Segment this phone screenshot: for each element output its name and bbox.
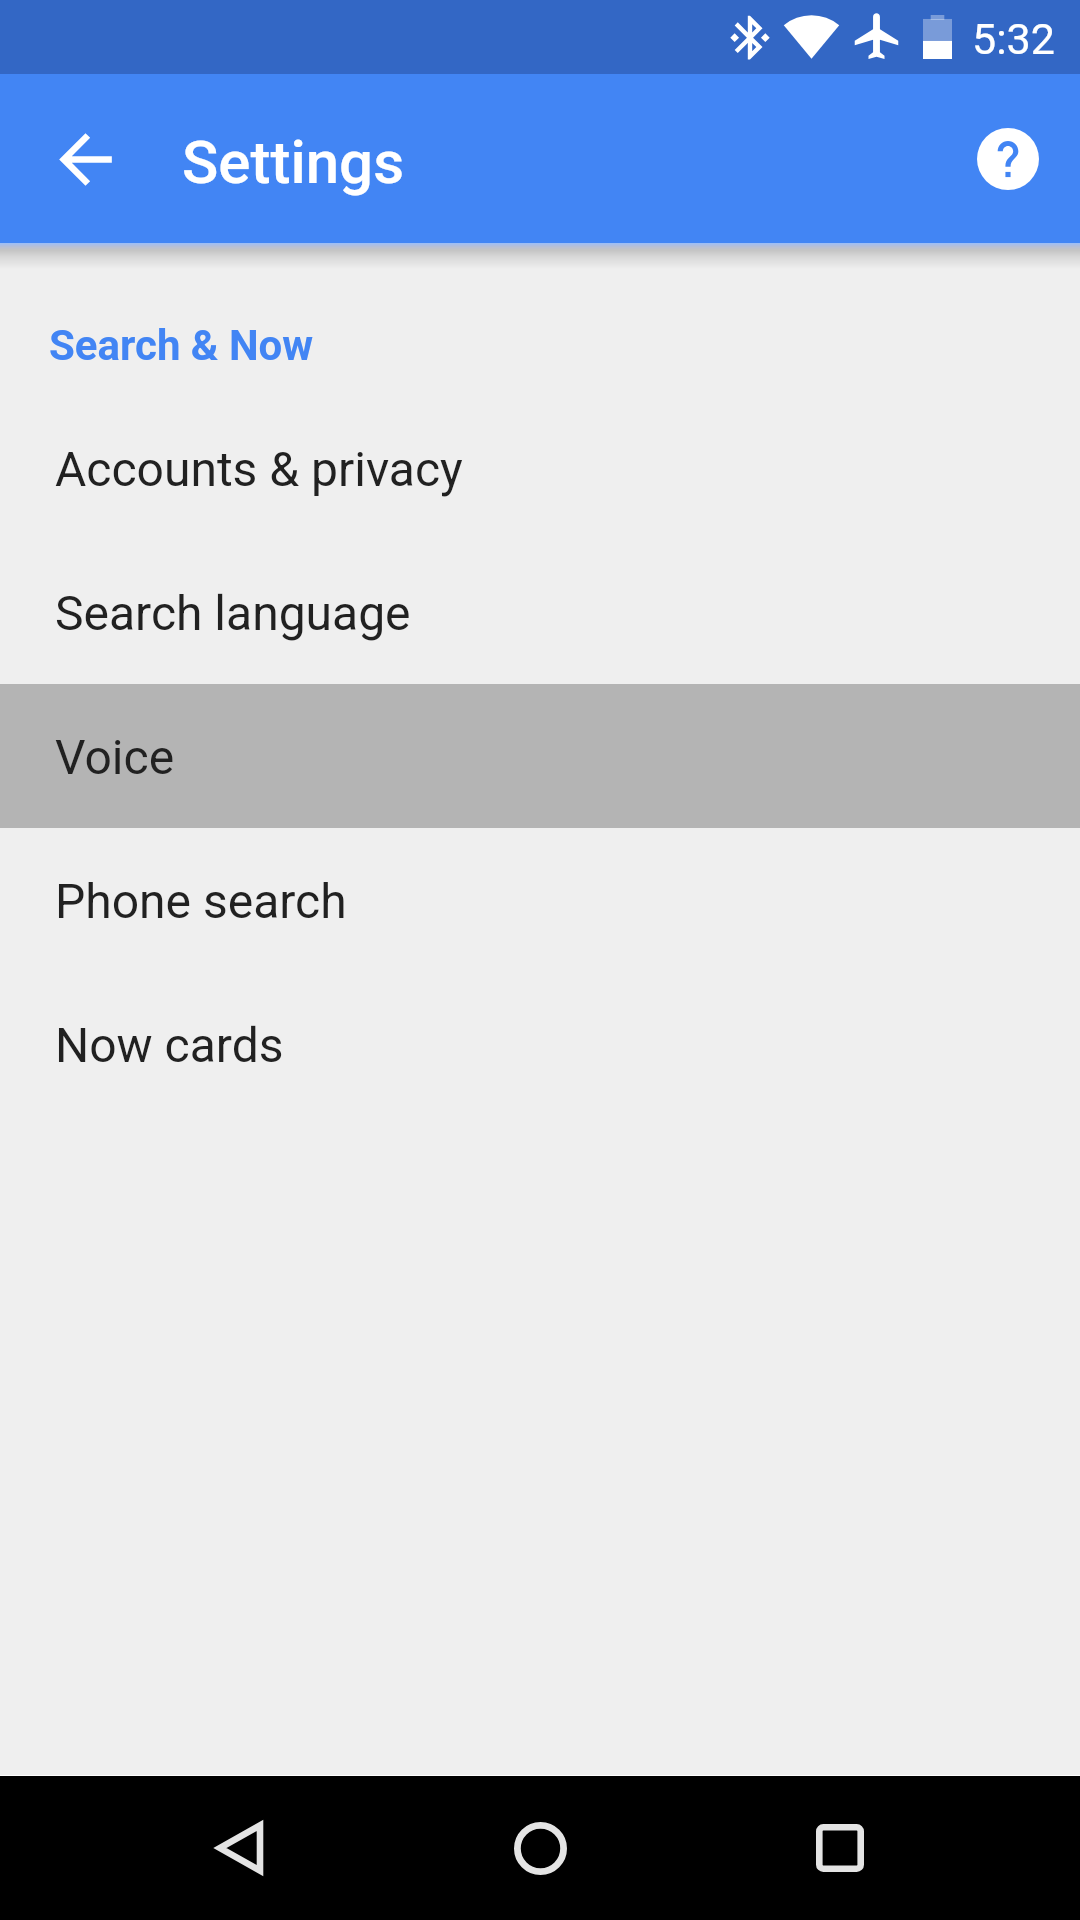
button[interactable]: Accounts & privacy [0, 396, 1080, 540]
staticText: Phone search [55, 873, 347, 929]
button[interactable]: Home [492, 1800, 588, 1896]
staticText: Search language [55, 585, 411, 641]
button[interactable]: Navigate up [37, 111, 133, 207]
staticText: Search & Now [49, 321, 314, 370]
staticText: Now cards [55, 1017, 284, 1073]
staticText: Settings [182, 127, 405, 197]
button[interactable]: Now cards [0, 972, 1080, 1116]
button[interactable]: Search language [0, 540, 1080, 684]
staticText: 5:32 [972, 14, 1055, 64]
staticText: Voice [55, 729, 175, 785]
button[interactable]: Voice [0, 684, 1080, 828]
button[interactable]: Recent apps [792, 1800, 888, 1896]
button[interactable]: Back [192, 1800, 288, 1896]
button[interactable]: Phone search [0, 828, 1080, 972]
button[interactable]: Help [960, 111, 1056, 207]
staticText: Accounts & privacy [55, 441, 463, 497]
